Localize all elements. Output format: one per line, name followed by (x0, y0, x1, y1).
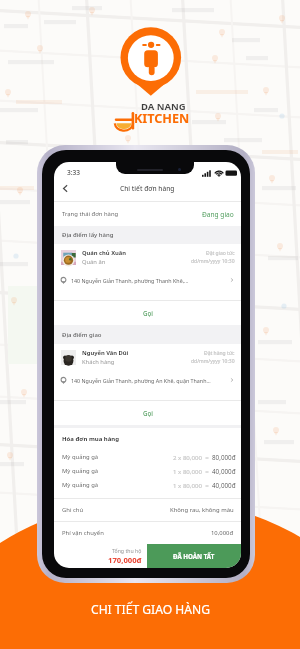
staticText: Ghi chú (62, 506, 84, 514)
staticText: dd/mm/yyyy 10:30 (191, 358, 235, 365)
staticText: 3:33 (67, 168, 81, 177)
staticText: Phí vận chuyển (62, 529, 104, 537)
staticText: 140 Nguyễn Giản Thanh, phường An Khê, qu… (71, 377, 229, 384)
button[interactable]: ĐÃ HOÀN TẤT (147, 544, 241, 568)
button[interactable]: Back (54, 182, 76, 195)
staticText: 1 x 80,000 (173, 481, 202, 489)
staticText: 1 x 80,000 (173, 467, 202, 475)
staticText: Mỳ quảng gà (62, 467, 99, 475)
staticText: 170,000đ (108, 555, 142, 565)
staticText: DA NANG (141, 100, 186, 113)
staticText: Chi tiết đơn hàng (120, 184, 175, 193)
staticText: Quán chủ Xuân (82, 249, 127, 257)
staticText: ĐÃ HOÀN TẤT (173, 552, 215, 560)
staticText: Tổng thu hộ (112, 547, 142, 554)
staticText: Không rau, không màu (170, 506, 234, 514)
staticText: Khách hàng (82, 358, 115, 366)
button[interactable]: 140 Nguyễn Giản Thanh, phường An Khê, qu… (60, 370, 235, 390)
staticText: Hóa đơn mua hàng (62, 435, 120, 443)
button[interactable]: Quán chủ Xuân (61, 244, 235, 270)
staticText: Đang giao (202, 210, 234, 219)
staticText: Quán ăn (82, 258, 106, 266)
staticText: = (202, 481, 212, 489)
button[interactable]: 140 Nguyễn Giản Thanh, phường Thanh Khê,… (60, 270, 235, 290)
staticText: Gọi (143, 309, 153, 317)
staticText: Địa điểm lấy hàng (62, 231, 114, 239)
staticText: Trạng thái đơn hàng (62, 210, 119, 218)
staticText: Mỳ quảng gà (62, 453, 99, 461)
staticText: = (202, 467, 212, 475)
staticText: CHI TIẾT GIAO HÀNG (91, 601, 210, 617)
staticText: KITCHEN (134, 110, 190, 127)
staticText: Mỳ quảng gà (62, 481, 99, 489)
staticText: = (202, 453, 212, 461)
button[interactable]: Gọi (54, 401, 241, 425)
staticText: Gọi (143, 409, 153, 417)
staticText: 2 x 80,000 (173, 453, 202, 461)
staticText: 40,000đ (212, 481, 236, 490)
staticText: Đặt hàng tức (204, 350, 235, 357)
staticText: 80,000đ (212, 453, 236, 462)
staticText: dd/mm/yyyy 10:30 (191, 258, 235, 265)
staticText: Nguyễn Văn Dũi (82, 349, 129, 357)
staticText: Đặt giao tức (206, 250, 235, 257)
staticText: 140 Nguyễn Giản Thanh, phường Thanh Khê,… (71, 277, 229, 284)
staticText: 40,000đ (212, 467, 236, 476)
button[interactable]: Nguyễn Văn Dũi (61, 344, 235, 370)
staticText: Địa điểm giao (62, 331, 102, 339)
button[interactable]: Gọi (54, 301, 241, 325)
staticText: 10,000đ (211, 529, 234, 537)
